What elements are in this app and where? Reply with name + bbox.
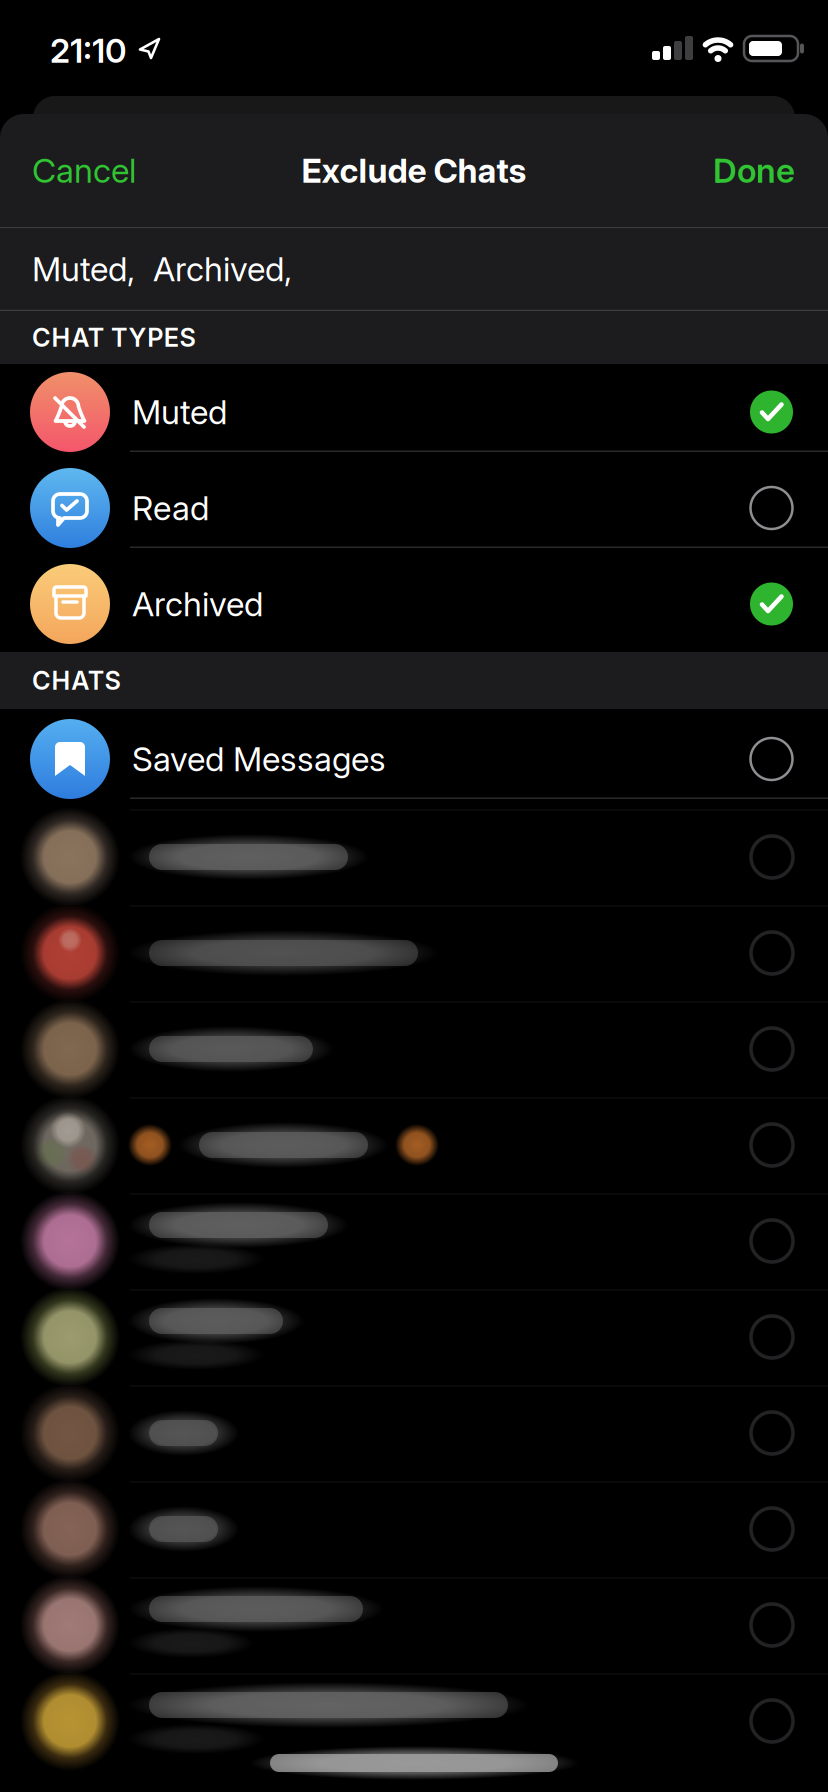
button[interactable]: Cancel	[32, 151, 136, 190]
button[interactable]: Chat	[0, 1385, 828, 1481]
staticText: Saved Messages	[132, 739, 386, 779]
staticText: Archived	[132, 584, 263, 624]
staticText: Muted, Archived,	[32, 249, 292, 289]
button[interactable]: Chat	[0, 1673, 828, 1769]
button[interactable]: Chat	[0, 1289, 828, 1385]
button[interactable]: Chat	[0, 809, 828, 905]
button[interactable]: Chat	[0, 905, 828, 1001]
button[interactable]: Chat	[0, 1193, 828, 1289]
button[interactable]: Saved Messages	[0, 709, 828, 809]
button[interactable]: Done	[713, 151, 795, 190]
staticText: CHATS	[32, 666, 120, 695]
button[interactable]: Chat	[0, 1577, 828, 1673]
staticText: Done	[713, 151, 795, 190]
staticText: Cancel	[32, 151, 136, 190]
button[interactable]: Muted	[0, 364, 828, 460]
staticText: Muted	[132, 392, 227, 432]
button[interactable]: Chat	[0, 1097, 828, 1193]
button[interactable]: Chat	[0, 1001, 828, 1097]
button[interactable]: Read	[0, 460, 828, 556]
button[interactable]: Chat	[0, 1481, 828, 1577]
staticText: 21:10	[50, 31, 127, 70]
staticText: Read	[132, 488, 209, 528]
button[interactable]: Archived	[0, 556, 828, 652]
staticText: CHAT TYPES	[32, 323, 195, 352]
staticText: Exclude Chats	[301, 151, 526, 190]
